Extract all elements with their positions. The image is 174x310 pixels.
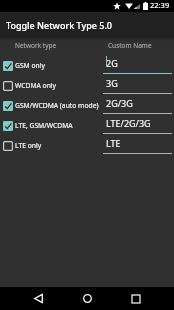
button[interactable]: GSM/WCDMA (auto mode) [0, 97, 100, 115]
staticText: LTE only [15, 141, 42, 150]
staticText: LTE [106, 137, 121, 149]
staticText: 2G [106, 57, 118, 69]
staticText: GSM only [15, 61, 45, 70]
staticText: LTE/2G/3G [106, 117, 151, 129]
staticText: 3G [106, 77, 118, 89]
button[interactable]: 3G [103, 75, 172, 95]
button[interactable]: 2G/3G [103, 95, 172, 115]
staticText: Network type [15, 41, 57, 50]
staticText: GSM/WCDMA (auto mode) [15, 101, 99, 110]
staticText: Custom Name [108, 41, 152, 50]
staticText: 22:39 [150, 0, 170, 10]
staticText: Toggle Network Type 5.0 [6, 19, 113, 31]
button[interactable]: LTE, GSM/WCDMA [0, 117, 100, 135]
button[interactable]: 2G [103, 55, 172, 75]
button[interactable]: LTE only [0, 137, 100, 155]
button[interactable]: GSM only [0, 57, 100, 75]
button[interactable]: Back [27, 287, 50, 310]
button[interactable]: WCDMA only [0, 77, 100, 95]
button[interactable]: LTE/2G/3G [103, 115, 172, 135]
staticText: 2G/3G [106, 97, 133, 109]
button[interactable]: LTE [103, 135, 172, 155]
staticText: WCDMA only [15, 81, 57, 90]
staticText: LTE, GSM/WCDMA [15, 121, 73, 130]
button[interactable]: Recent apps [124, 287, 147, 310]
button[interactable]: Home [76, 287, 99, 310]
